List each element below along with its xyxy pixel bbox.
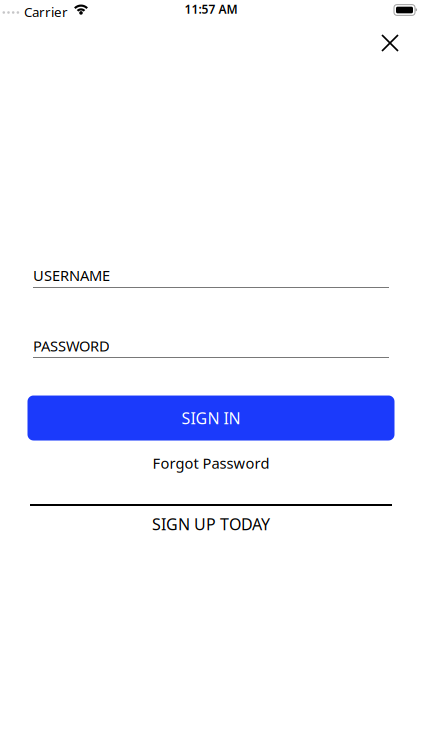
button[interactable]: Forgot Password <box>0 450 422 476</box>
button[interactable]: SIGN UP TODAY <box>0 511 422 537</box>
staticText: 11:57 AM <box>184 1 237 17</box>
staticText: Carrier <box>24 3 68 21</box>
button[interactable]: Close <box>368 21 412 65</box>
staticText: Forgot Password <box>152 453 269 473</box>
staticText: PASSWORD <box>33 336 110 355</box>
staticText: USERNAME <box>33 265 110 285</box>
button[interactable]: SIGN IN <box>27 395 394 440</box>
staticText: SIGN IN <box>181 407 240 429</box>
staticText: SIGN UP TODAY <box>152 513 270 535</box>
